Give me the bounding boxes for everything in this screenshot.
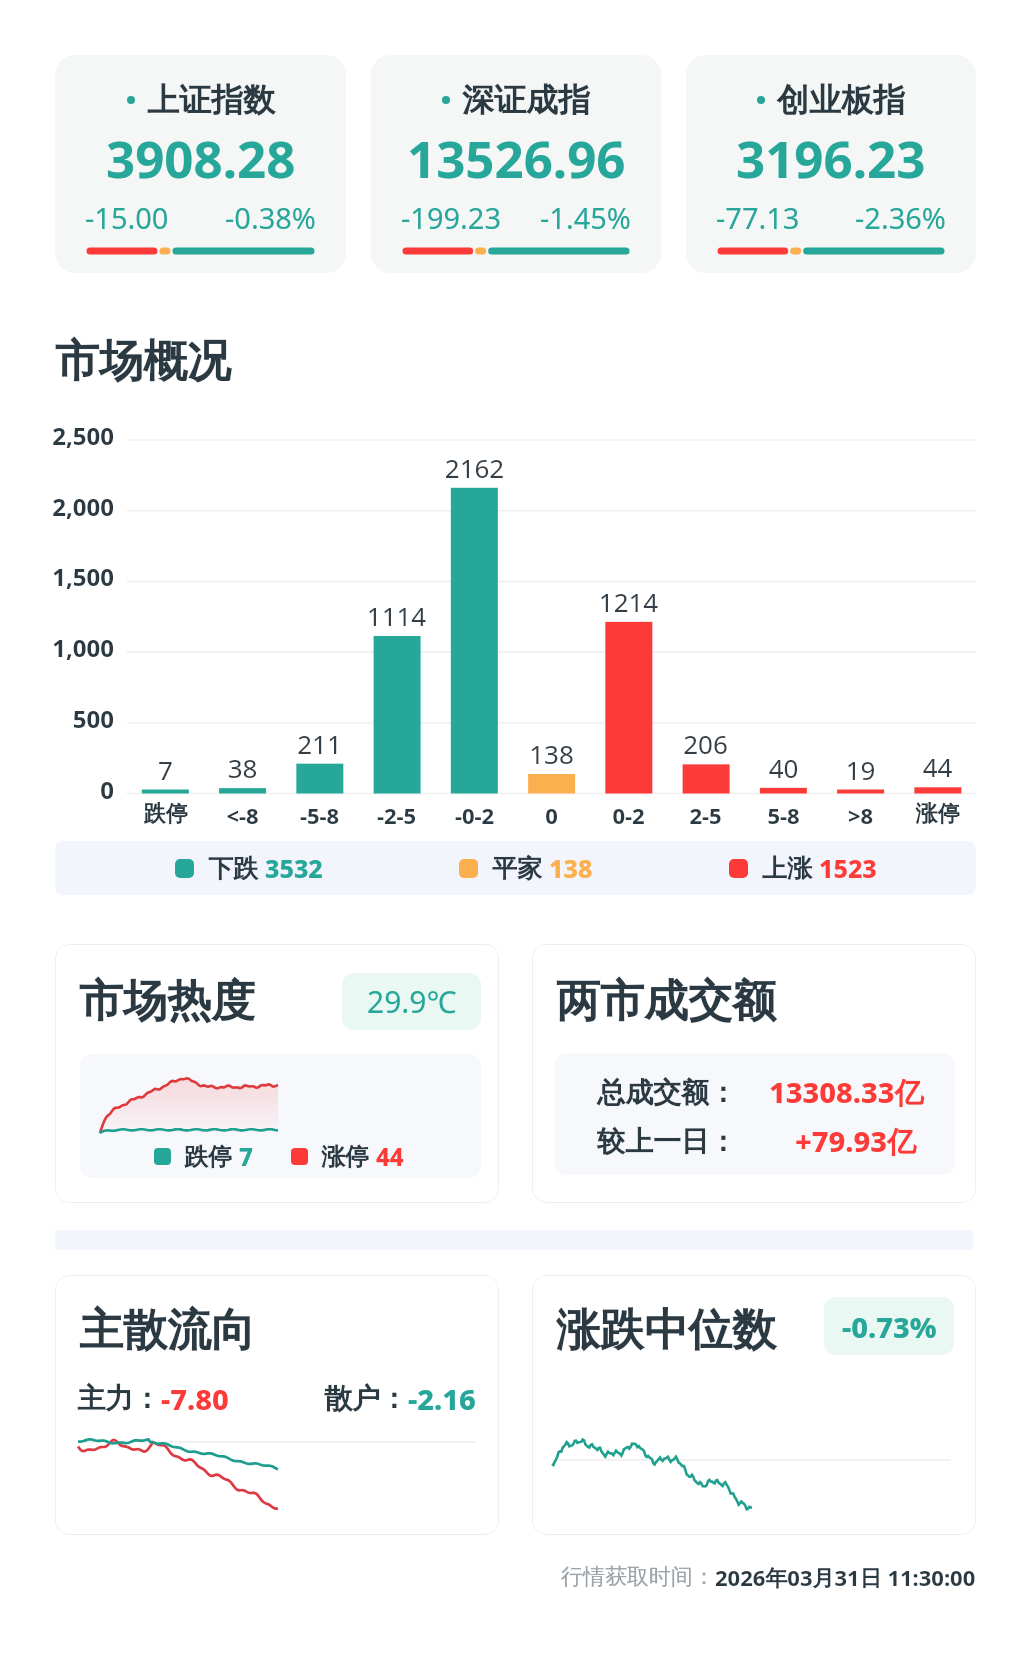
staticText: <-8 (204, 800, 281, 830)
staticText: -15.00 (85, 198, 169, 237)
staticText: 2-5 (667, 800, 744, 830)
staticText: 44 (899, 749, 976, 784)
staticText: 上证指数 (147, 80, 275, 120)
staticText: -1.45% (540, 198, 631, 237)
button[interactable]: 市场概况涨跌分布柱状图 (0, 415, 1031, 830)
staticText: -0-2 (436, 800, 513, 830)
staticText: 涨停 (321, 1142, 369, 1172)
staticText: 500 (0, 702, 114, 735)
staticText: 2162 (436, 450, 513, 485)
staticText: -2-5 (358, 800, 435, 830)
staticText: 13308.33亿 (769, 1072, 924, 1112)
button[interactable]: 上证指数 (55, 55, 346, 273)
staticText: 总成交额： (597, 1075, 737, 1110)
staticText: 涨跌中位数 (556, 1303, 776, 1358)
staticText: 跌停 (184, 1142, 232, 1172)
staticText: -0.38% (225, 198, 316, 237)
staticText: 2026年03月31日 11:30:00 (715, 1562, 976, 1592)
staticText: 0 (513, 800, 590, 830)
button[interactable]: 深证成指 (371, 55, 661, 273)
staticText: 市场热度 (79, 974, 255, 1029)
staticText: 3532 (265, 851, 323, 885)
staticText: 1114 (358, 598, 435, 633)
staticText: 1,500 (0, 560, 114, 593)
staticText: 5-8 (745, 800, 822, 830)
staticText: 2,500 (0, 419, 114, 452)
staticText: -5-8 (281, 800, 358, 830)
staticText: 两市成交额 (556, 974, 776, 1029)
staticText: -7.80 (161, 1379, 229, 1418)
staticText: 上涨 (762, 853, 812, 884)
staticText: 主力： (77, 1381, 161, 1416)
staticText: 下跌 (208, 853, 258, 884)
staticText: 1214 (590, 584, 667, 619)
staticText: 市场概况 (55, 334, 231, 389)
staticText: -2.16 (408, 1379, 476, 1418)
staticText: 1,000 (0, 631, 114, 664)
staticText: 1523 (819, 851, 877, 885)
staticText: 138 (513, 736, 590, 771)
staticText: 206 (667, 726, 744, 761)
staticText: >8 (822, 800, 899, 830)
staticText: -0.73% (842, 1307, 937, 1346)
staticText: 主散流向 (79, 1303, 255, 1358)
staticText: 平家 (492, 853, 542, 884)
staticText: -199.23 (401, 198, 502, 237)
staticText: 行情获取时间： (561, 1563, 715, 1591)
staticText: 2,000 (0, 490, 114, 523)
staticText: 散户： (324, 1381, 408, 1416)
staticText: 创业板指 (777, 80, 905, 120)
button[interactable]: 下跌 (175, 851, 323, 885)
staticText: 7 (127, 752, 204, 787)
staticText: 深证成指 (462, 80, 590, 120)
staticText: 7 (239, 1140, 253, 1173)
staticText: 涨停 (899, 800, 976, 828)
staticText: 138 (549, 851, 593, 885)
staticText: -2.36% (855, 198, 946, 237)
staticText: 13526.96 (407, 123, 626, 192)
button[interactable]: 两市成交额 (532, 944, 976, 1203)
staticText: 40 (745, 750, 822, 785)
staticText: 跌停 (127, 800, 204, 828)
staticText: 29.9℃ (367, 981, 457, 1022)
staticText: 0 (0, 773, 114, 806)
staticText: 3908.28 (106, 123, 296, 192)
button[interactable]: 平家 (459, 851, 593, 885)
staticText: 38 (204, 750, 281, 785)
button[interactable]: 主散流向 (55, 1275, 499, 1535)
staticText: 0-2 (590, 800, 667, 830)
staticText: -77.13 (716, 198, 800, 237)
staticText: 44 (376, 1140, 404, 1173)
staticText: 较上一日： (597, 1124, 737, 1159)
staticText: 3196.23 (736, 123, 926, 192)
staticText: +79.93亿 (795, 1121, 917, 1161)
button[interactable]: 市场热度 (55, 944, 499, 1203)
button[interactable]: 创业板指 (686, 55, 976, 273)
staticText: 211 (281, 726, 358, 761)
staticText: 19 (822, 752, 899, 787)
button[interactable]: 上涨 (729, 851, 877, 885)
button[interactable]: 涨跌中位数 (532, 1275, 976, 1535)
